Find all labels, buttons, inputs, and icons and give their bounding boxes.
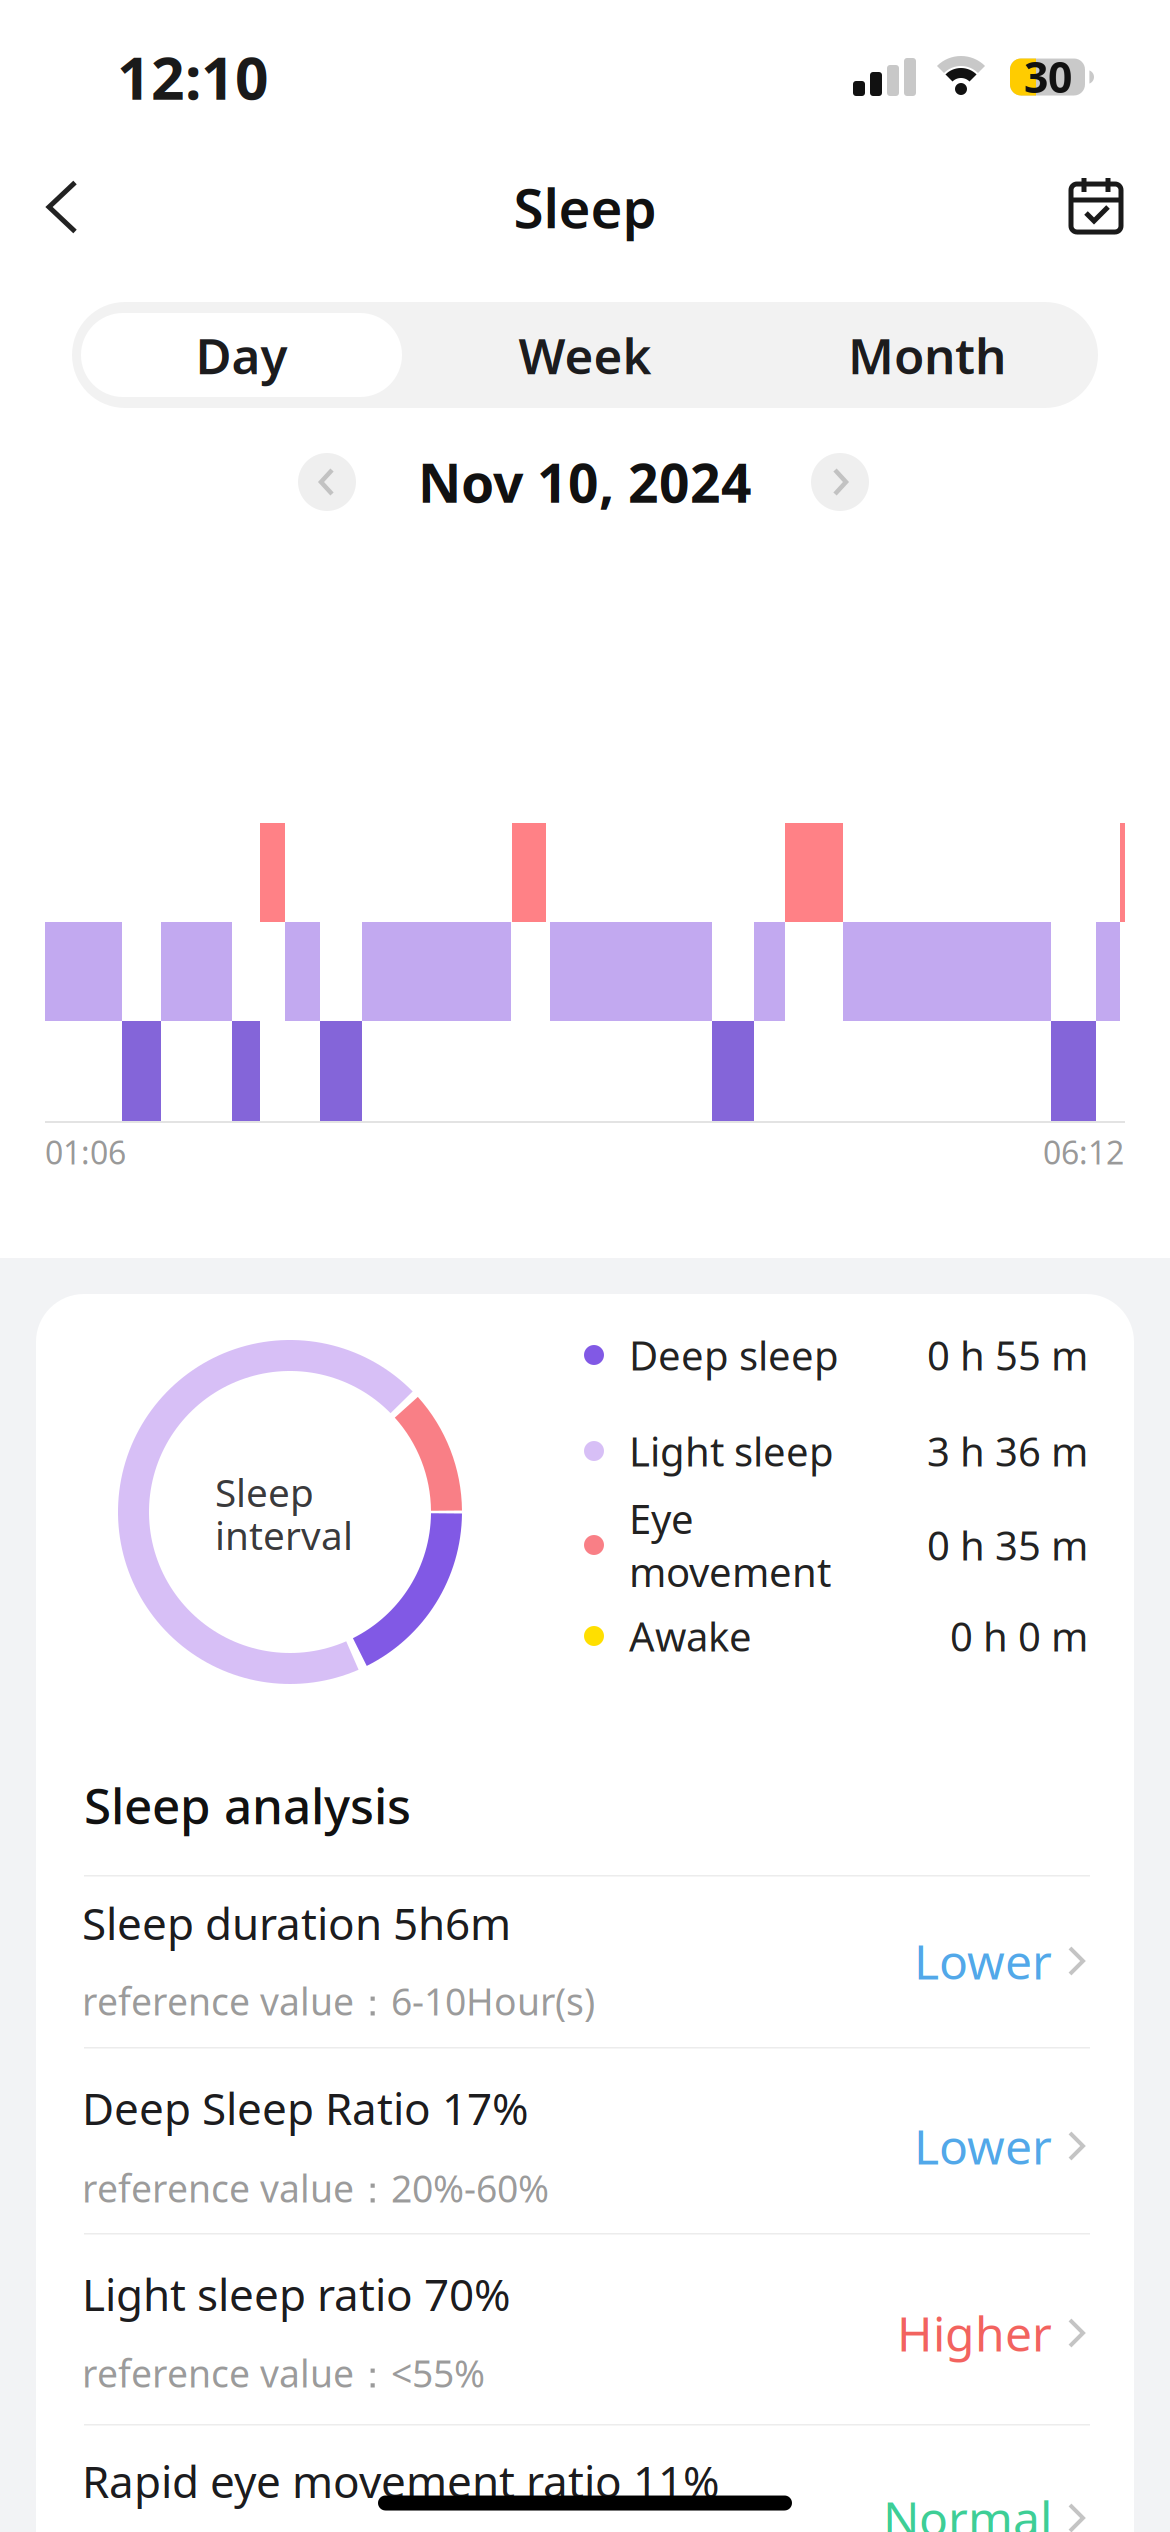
staticText: Sleep duration 5h6m xyxy=(82,1894,511,1952)
button[interactable]: Week xyxy=(414,302,756,408)
staticText: reference value：<55% xyxy=(82,2348,485,2398)
staticText: Light sleep ratio 70% xyxy=(82,2265,511,2323)
staticText: Week xyxy=(518,322,651,388)
staticText: reference value：20%-60% xyxy=(82,2163,549,2213)
staticText: Sleep xyxy=(513,171,656,243)
staticText: Eye xyxy=(629,1492,694,1545)
staticText: Month xyxy=(848,322,1006,388)
staticText: Sleep xyxy=(215,1466,314,1518)
button[interactable]: Rapid eye movement ratio 11% xyxy=(82,2430,1088,2532)
staticText: 0 h 55 m xyxy=(927,1328,1088,1381)
staticText: reference value：6-10Hour(s) xyxy=(82,1976,595,2026)
staticText: Lower xyxy=(914,2114,1052,2178)
button[interactable]: Previous day xyxy=(298,453,356,511)
staticText: Awake xyxy=(629,1609,752,1662)
staticText: 0 h 0 m xyxy=(950,1609,1088,1662)
staticText: Nov 10, 2024 xyxy=(418,447,752,517)
button[interactable]: Back xyxy=(32,177,92,237)
staticText: 30 xyxy=(1024,48,1072,105)
button[interactable]: Next day xyxy=(811,453,869,511)
button[interactable]: Month xyxy=(756,302,1098,408)
staticText: 01:06 xyxy=(45,1131,126,1173)
staticText: 3 h 36 m xyxy=(927,1424,1088,1477)
staticText: Sleep analysis xyxy=(84,1772,411,1838)
staticText: interval xyxy=(215,1509,353,1561)
staticText: Deep Sleep Ratio 17% xyxy=(82,2079,529,2137)
button[interactable]: Light sleep ratio 70% xyxy=(82,2240,1088,2420)
staticText: Lower xyxy=(914,1929,1052,1993)
staticText: Rapid eye movement ratio 11% xyxy=(82,2452,720,2510)
staticText: 12:10 xyxy=(117,38,269,116)
staticText: Day xyxy=(195,322,287,388)
button[interactable]: Calendar xyxy=(1064,172,1128,236)
staticText: movement xyxy=(629,1545,831,1598)
staticText: 06:12 xyxy=(1043,1131,1124,1173)
staticText: Deep sleep xyxy=(629,1328,839,1381)
button[interactable]: Deep Sleep Ratio 17% xyxy=(82,2051,1088,2231)
button[interactable]: Sleep duration 5h6m xyxy=(82,1872,1088,2052)
staticText: 0 h 35 m xyxy=(927,1518,1088,1571)
staticText: Normal xyxy=(883,2486,1052,2532)
staticText: Light sleep xyxy=(629,1424,834,1477)
button[interactable]: Day xyxy=(81,313,402,397)
staticText: Higher xyxy=(897,2301,1052,2365)
